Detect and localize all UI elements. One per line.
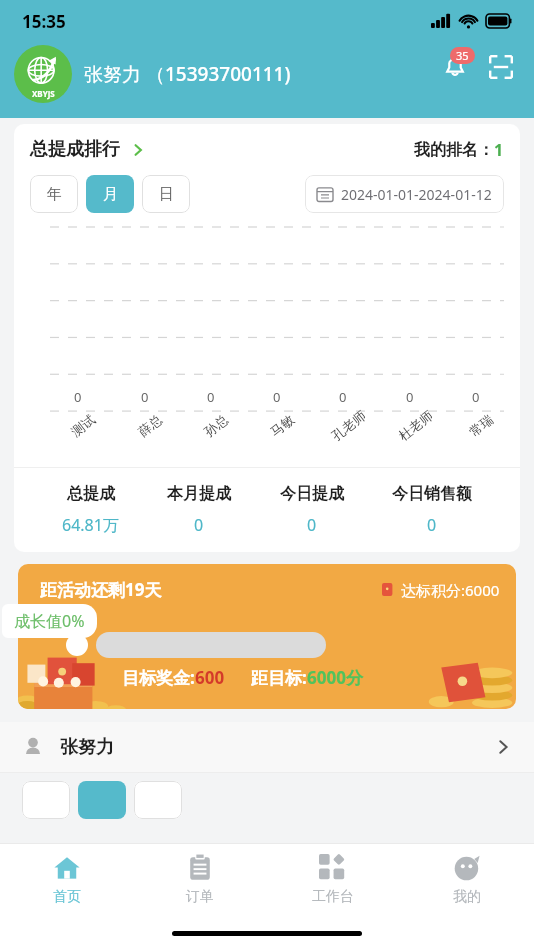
button[interactable]: 我的 <box>400 844 534 916</box>
button[interactable]: 年 <box>30 175 78 213</box>
staticText: 35 <box>456 48 469 63</box>
staticText: 今日提成 <box>280 484 344 504</box>
staticText: 本月提成 <box>167 484 231 504</box>
staticText: 测试 <box>68 411 98 440</box>
staticText: 目标奖金: <box>122 666 195 689</box>
button[interactable] <box>22 781 70 819</box>
button[interactable]: 今日提成 <box>280 484 344 536</box>
staticText: 0 <box>427 514 437 536</box>
staticText: 我的 <box>453 888 481 906</box>
staticText: 达标积分:6000 <box>401 580 500 600</box>
button[interactable]: 2024-01-01-2024-01-12 <box>305 175 504 213</box>
button[interactable]: 订单 <box>133 844 266 916</box>
button[interactable]: 工作台 <box>266 844 400 916</box>
staticText: 首页 <box>53 888 81 906</box>
staticText: 成长值0% <box>14 610 85 632</box>
staticText: 杜老师 <box>395 407 436 444</box>
button[interactable]: 张努力 <box>0 722 534 772</box>
button[interactable]: 日 <box>142 175 190 213</box>
staticText: 0 <box>339 388 347 406</box>
button[interactable]: 今日销售额 <box>392 484 472 536</box>
button[interactable]: Scan <box>480 46 522 88</box>
staticText: 64.81万 <box>62 514 119 536</box>
button[interactable]: Notifications <box>434 46 476 88</box>
staticText: 2024-01-01-2024-01-12 <box>341 185 492 204</box>
staticText: 600 <box>195 666 225 689</box>
staticText: 工作台 <box>312 888 354 906</box>
staticText: 0 <box>74 388 82 406</box>
button[interactable]: 总提成排行 <box>30 138 146 161</box>
staticText: 张努力 （15393700111) <box>84 61 291 87</box>
staticText: 0 <box>141 388 149 406</box>
staticText: 马敏 <box>267 411 297 440</box>
staticText: 距目标: <box>251 666 307 689</box>
staticText: 0 <box>194 514 204 536</box>
staticText: 总提成排行 <box>30 138 120 161</box>
staticText: 距活动还剩19天 <box>40 578 162 601</box>
staticText: 薛总 <box>135 411 165 440</box>
staticText: 常瑞 <box>466 411 496 440</box>
staticText: 6000分 <box>307 666 363 689</box>
staticText: 孙总 <box>201 411 231 440</box>
staticText: 孔老师 <box>328 407 369 444</box>
staticText: 0 <box>307 514 317 536</box>
staticText: 月 <box>103 185 118 204</box>
staticText: 日 <box>159 185 174 204</box>
staticText: 总提成 <box>67 484 115 504</box>
staticText: 0 <box>406 388 414 406</box>
staticText: 15:35 <box>22 10 66 33</box>
button[interactable]: 本月提成 <box>167 484 231 536</box>
button[interactable]: Avatar <box>14 45 72 103</box>
staticText: 0 <box>207 388 215 406</box>
button[interactable] <box>78 781 126 819</box>
staticText: 我的排名： <box>414 140 494 160</box>
staticText: XBYJS <box>32 88 55 99</box>
button[interactable]: 总提成 <box>62 484 119 536</box>
staticText: 1 <box>494 139 504 161</box>
staticText: 订单 <box>186 888 214 906</box>
staticText: 今日销售额 <box>392 484 472 504</box>
staticText: 张努力 <box>60 736 114 759</box>
button[interactable]: 月 <box>86 175 134 213</box>
staticText: 年 <box>47 185 62 204</box>
staticText: 0 <box>472 388 480 406</box>
staticText: 0 <box>273 388 281 406</box>
button[interactable]: 首页 <box>0 844 133 916</box>
button[interactable]: 距活动还剩19天 <box>18 564 516 709</box>
button[interactable] <box>134 781 182 819</box>
